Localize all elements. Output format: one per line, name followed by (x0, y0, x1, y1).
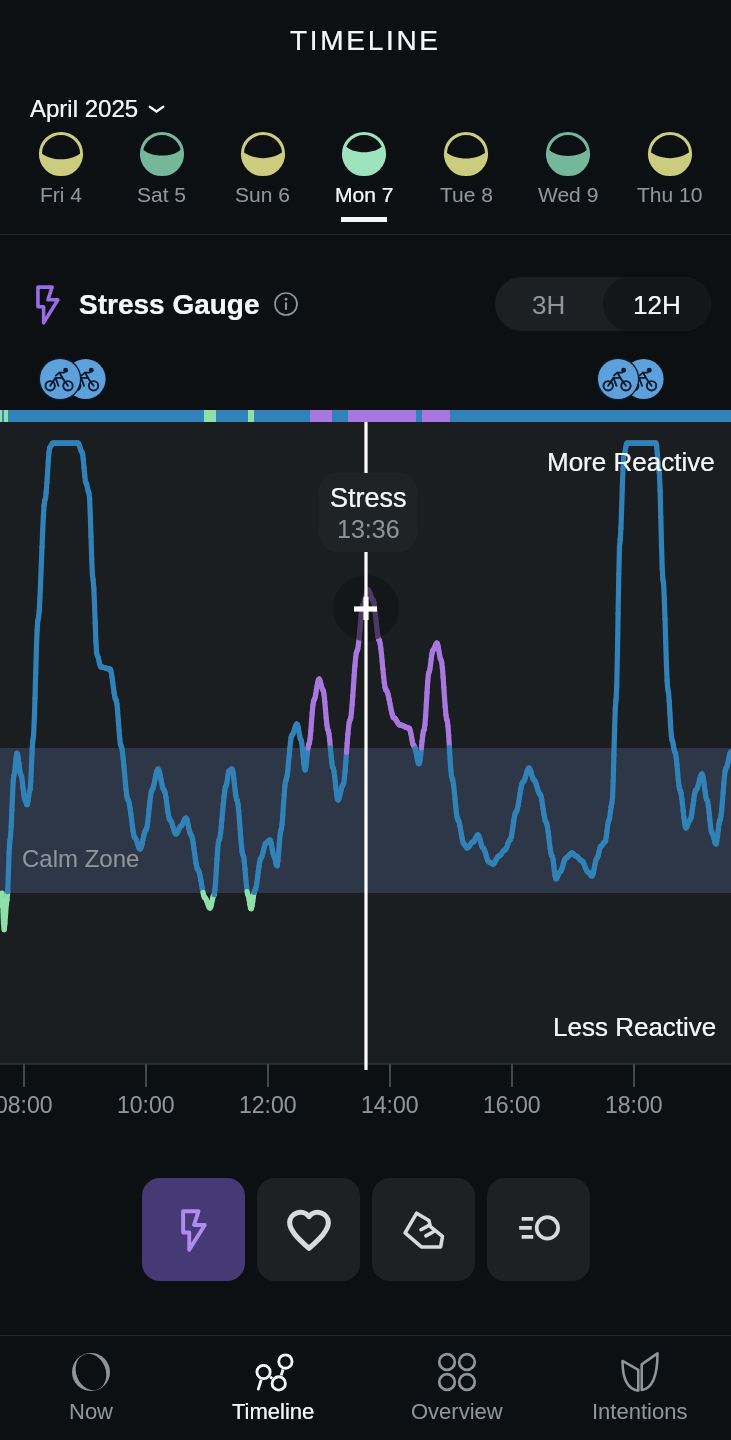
staticText: Now (69, 1399, 114, 1424)
staticText: Stress Gauge (79, 289, 260, 320)
staticText: Overview (411, 1399, 503, 1424)
button[interactable]: Wed 9 (517, 131, 619, 222)
button[interactable]: TIMELINE (0, 0, 731, 80)
button[interactable]: Sun 6 (212, 131, 313, 222)
button[interactable]: Stress (142, 1178, 245, 1281)
staticText: 08:00 (0, 1092, 53, 1118)
staticText: Tue 8 (440, 183, 493, 206)
button[interactable]: Timeline (182, 1336, 365, 1440)
button[interactable]: Sat 5 (111, 131, 212, 222)
staticText: 12:00 (239, 1092, 297, 1118)
staticText: Wed 9 (538, 183, 599, 206)
staticText: April 2025 (30, 95, 139, 122)
staticText: More Reactive (547, 447, 715, 476)
staticText: 3H (532, 290, 566, 319)
staticText: 14:00 (361, 1092, 419, 1118)
staticText: Calm Zone (22, 845, 140, 872)
staticText: 12H (633, 290, 681, 319)
staticText: Fri 4 (40, 183, 82, 206)
button[interactable]: Stress (319, 473, 417, 552)
button[interactable]: 12H (603, 277, 711, 331)
staticText: Sat 5 (137, 183, 187, 206)
staticText: Mon 7 (335, 183, 394, 206)
button[interactable]: Intentions (548, 1336, 731, 1440)
staticText: 10:00 (117, 1092, 175, 1118)
staticText: 13:36 (337, 515, 400, 543)
button[interactable]: Fri 4 (10, 131, 111, 222)
button[interactable]: Overview (365, 1336, 548, 1440)
staticText: Intentions (592, 1399, 688, 1424)
staticText: Timeline (232, 1399, 315, 1424)
button[interactable]: Mon 7 (313, 131, 415, 222)
staticText: 16:00 (483, 1092, 541, 1118)
button[interactable]: Info (274, 292, 298, 316)
staticText: Sun 6 (235, 183, 290, 206)
button[interactable]: Heart rate (257, 1178, 360, 1281)
button[interactable]: Steps (372, 1178, 475, 1281)
staticText: Stress (330, 483, 407, 513)
button[interactable]: April 2025 (30, 95, 165, 122)
staticText: Thu 10 (637, 183, 703, 206)
button[interactable]: Activity (487, 1178, 590, 1281)
button[interactable]: Now (0, 1336, 182, 1440)
staticText: TIMELINE (290, 25, 441, 56)
button[interactable]: Thu 10 (619, 131, 721, 222)
staticText: Less Reactive (553, 1012, 717, 1041)
staticText: 18:00 (605, 1092, 663, 1118)
button[interactable]: 3H (495, 277, 603, 331)
button[interactable]: Tue 8 (415, 131, 517, 222)
